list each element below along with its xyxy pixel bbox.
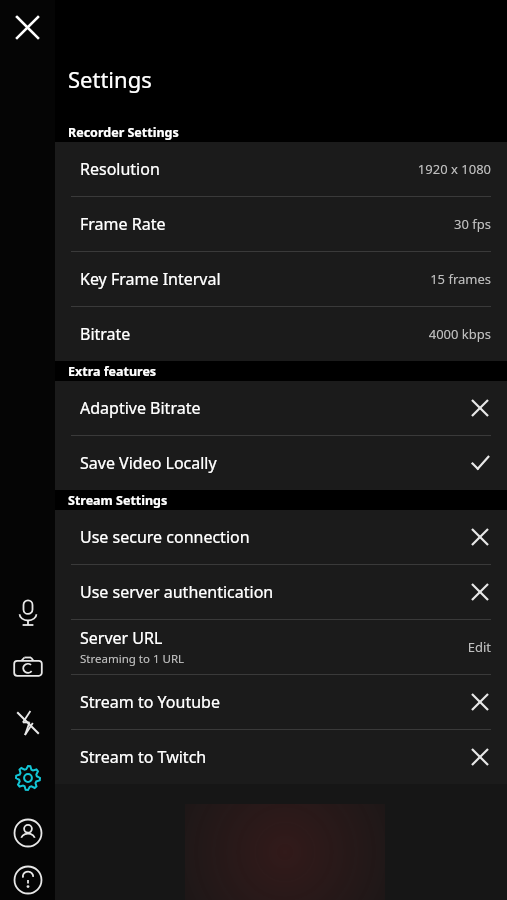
button[interactable]: Close — [0, 0, 55, 55]
staticText: 30 fps — [454, 215, 491, 233]
button[interactable]: Bitrate — [55, 307, 507, 361]
button[interactable]: Stream to Youtube — [55, 675, 507, 729]
button[interactable]: Microphone — [0, 585, 55, 640]
staticText: Extra features — [68, 363, 157, 380]
staticText: Resolution — [80, 158, 160, 180]
staticText: Settings — [68, 64, 152, 94]
staticText: Save Video Locally — [80, 452, 217, 474]
button[interactable]: Resolution — [55, 142, 507, 196]
staticText: Server URL — [80, 627, 163, 649]
button[interactable]: Server URL — [55, 620, 507, 674]
staticText: Key Frame Interval — [80, 268, 221, 290]
staticText: Streaming to 1 URL — [80, 651, 185, 667]
button[interactable]: Frame Rate — [55, 197, 507, 251]
staticText: Edit — [467, 638, 491, 656]
staticText: 15 frames — [430, 270, 491, 288]
button[interactable]: Use server authentication — [55, 565, 507, 619]
button[interactable]: Settings — [0, 750, 55, 805]
button[interactable]: Use secure connection — [55, 510, 507, 564]
button[interactable]: Account — [0, 805, 55, 860]
staticText: Stream to Twitch — [80, 746, 207, 768]
button[interactable]: Key Frame Interval — [55, 252, 507, 306]
staticText: Use server authentication — [80, 581, 274, 603]
staticText: Stream to Youtube — [80, 691, 220, 713]
staticText: Stream Settings — [68, 492, 168, 509]
button[interactable]: Flash off — [0, 695, 55, 750]
button[interactable]: Adaptive Bitrate — [55, 381, 507, 435]
button[interactable]: Save Video Locally — [55, 436, 507, 490]
staticText: Use secure connection — [80, 526, 250, 548]
staticText: Bitrate — [80, 323, 131, 345]
button[interactable]: Switch camera — [0, 640, 55, 695]
button[interactable]: Help — [0, 860, 55, 900]
staticText: Frame Rate — [80, 213, 166, 235]
staticText: Recorder Settings — [68, 124, 179, 141]
staticText: 1920 x 1080 — [417, 160, 491, 178]
staticText: Adaptive Bitrate — [80, 397, 201, 419]
button[interactable]: Stream to Twitch — [55, 730, 507, 784]
staticText: 4000 kbps — [428, 325, 491, 343]
